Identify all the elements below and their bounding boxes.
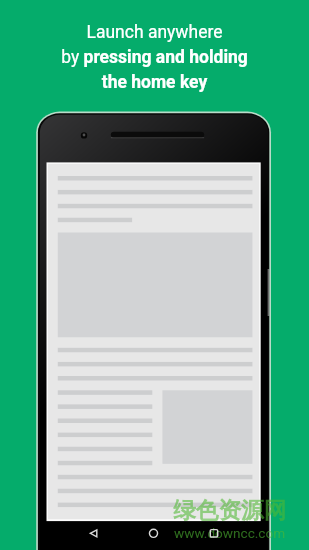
staticText: 绿色资源网 [173,496,287,525]
staticText: Launch anywhere by pressing and holding … [0,22,309,92]
button[interactable]: Back [76,519,112,549]
button[interactable]: Recent apps [196,519,232,549]
button[interactable]: Home [136,519,172,549]
staticText: www.downcc.com [174,525,286,541]
